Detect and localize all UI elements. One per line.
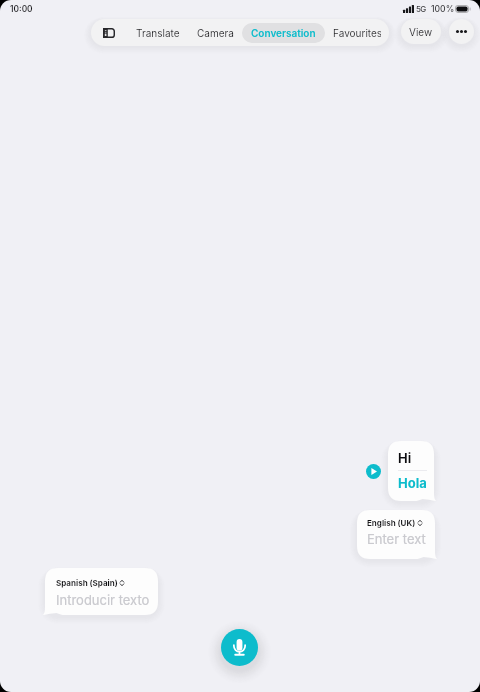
staticText: 10:00 [10,4,33,14]
staticText: Camera [197,27,234,39]
button[interactable]: Record [221,629,258,666]
button[interactable]: Conversation [242,23,325,43]
button[interactable]: Play translation [366,464,381,479]
button[interactable]: Translate [127,23,189,43]
staticText: English (UK) [367,518,416,528]
staticText: Spanish (Spain) [56,578,118,588]
button[interactable]: View [401,19,441,44]
button[interactable]: Hi [388,441,434,501]
staticText: 5G [416,4,426,13]
staticText: Hola [398,475,427,491]
staticText: View [409,26,433,38]
staticText: Hi [398,450,412,466]
staticText: Conversation [251,27,316,39]
button[interactable]: Spanish (Spain) [45,568,158,615]
staticText: Favourites [333,27,381,39]
button[interactable]: More options [449,19,474,44]
button[interactable]: Sidebar [91,19,127,46]
staticText: Translate [136,27,180,39]
staticText: Enter text [367,531,426,547]
button[interactable]: English (UK) [357,510,435,559]
button[interactable]: Favourites [325,23,389,43]
staticText: 100% [431,4,455,13]
staticText: Introducir texto [56,592,150,608]
button[interactable]: Camera [189,23,242,43]
